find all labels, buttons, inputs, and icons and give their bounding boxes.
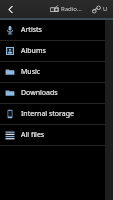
button[interactable]: Artists bbox=[0, 20, 113, 40]
staticText: Albums bbox=[21, 46, 46, 56]
button[interactable]: Music bbox=[0, 62, 113, 82]
staticText: All files bbox=[21, 130, 45, 140]
staticText: Music bbox=[21, 67, 41, 77]
button[interactable]: URL... bbox=[90, 0, 113, 18]
staticText: Artists bbox=[21, 25, 42, 35]
button[interactable]: All files bbox=[0, 125, 113, 145]
button[interactable]: Albums bbox=[0, 41, 113, 61]
button[interactable]: Radio... bbox=[48, 0, 84, 18]
staticText: Downloads bbox=[21, 88, 58, 98]
staticText: Internal storage bbox=[21, 109, 74, 119]
button[interactable]: Internal storage bbox=[0, 104, 113, 124]
staticText: Radio... bbox=[61, 5, 82, 13]
staticText: URL... bbox=[103, 5, 111, 13]
button[interactable]: Downloads bbox=[0, 83, 113, 103]
button[interactable]: Back bbox=[0, 0, 22, 18]
